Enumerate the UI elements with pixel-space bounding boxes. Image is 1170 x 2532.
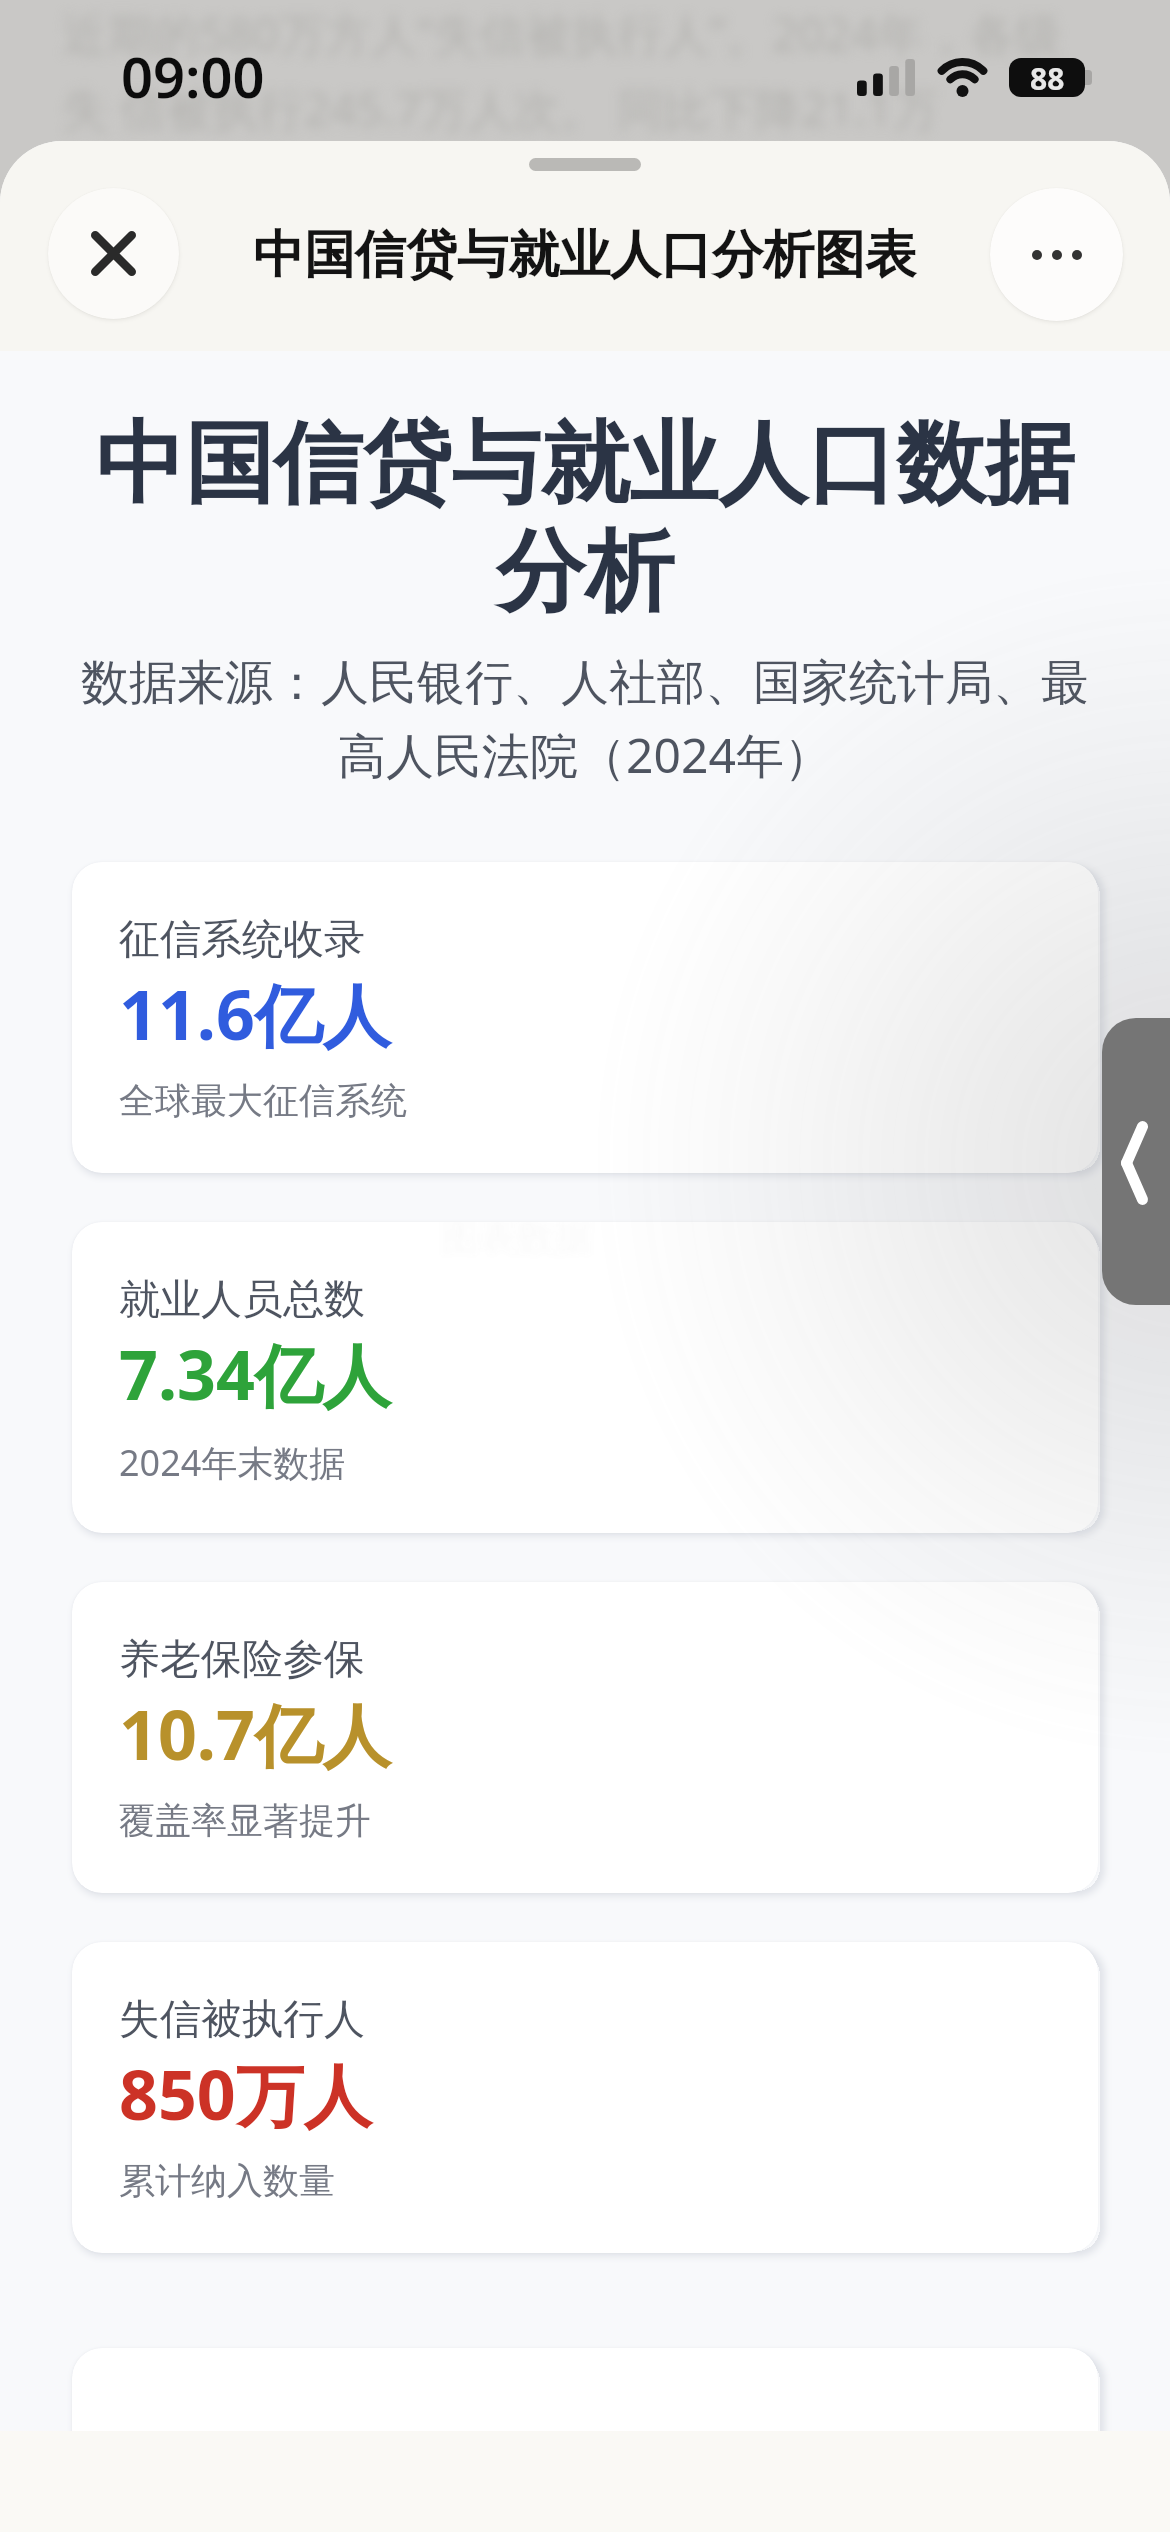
button[interactable]: 征信系统收录 (72, 862, 1098, 1173)
staticText: 就业人员总数 (119, 1274, 365, 1326)
staticText: 养老保险参保 (119, 1634, 365, 1686)
button[interactable]: Collapse panel (1102, 1018, 1170, 1305)
staticText: 失 信被执行245.7万人次。 同比下降21.1万 (62, 77, 1170, 140)
staticText: 征信系统收录 (119, 914, 365, 966)
button[interactable]: 失信被执行人 (72, 1942, 1098, 2253)
staticText: 数据来源：人民银行、人社部、国家统计局、最高人民法院（2024年） (76, 653, 1094, 787)
button[interactable]: 养老保险参保 (72, 1582, 1098, 1893)
staticText: 11.6亿人 (119, 967, 391, 1060)
staticText: 2024年入失信被执行人被撤销的案件 (62, 150, 1170, 210)
staticText: 中国信贷与就业人口分析图表 (253, 223, 916, 287)
staticText: 850万人 (119, 2047, 372, 2140)
button[interactable]: Close (48, 188, 179, 319)
staticText: 88 (1030, 58, 1065, 95)
staticText: 中国信贷与就业人口数据分析 (70, 408, 1100, 628)
staticText: 全球最大征信系统 (119, 1078, 407, 1123)
button[interactable]: 就业人员总数 (72, 1222, 1098, 1533)
staticText: 覆盖率显著提升 (119, 1798, 371, 1843)
staticText: 2024年末数据 (119, 1438, 346, 1487)
staticText: 7.34亿人 (119, 1327, 391, 1420)
button[interactable]: More options (990, 188, 1123, 321)
staticText: 累计纳入数量 (119, 2158, 335, 2203)
staticText: 近期的580万方人“失信被执行人”。2024年，各级 (62, 2, 1170, 65)
staticText: 09:00 (121, 38, 265, 114)
button[interactable]: Chart panel (72, 2348, 1098, 2532)
staticText: 失信被执行人 (119, 1994, 365, 2046)
staticText: 10.7亿人 (119, 1687, 391, 1780)
